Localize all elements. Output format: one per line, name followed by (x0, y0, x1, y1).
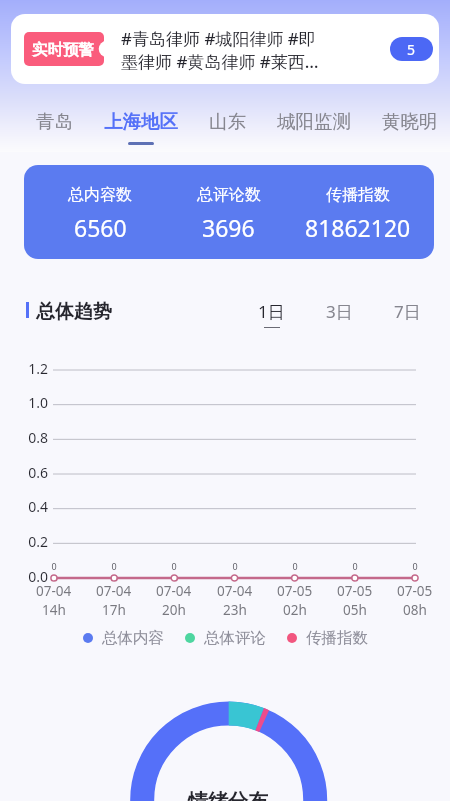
staticText: 山东 (209, 110, 246, 133)
staticText: 0 (403, 560, 427, 572)
staticText: 传播指数 (306, 628, 368, 648)
staticText: 情绪分布 (188, 789, 268, 801)
button[interactable]: 青岛 (36, 110, 73, 145)
staticText: 0 (223, 560, 247, 572)
button[interactable]: 1日 (258, 300, 285, 328)
button[interactable]: 山东 (209, 110, 246, 145)
staticText: 0 (42, 560, 66, 572)
staticText: 6560 (74, 212, 127, 243)
staticText: 08h (403, 601, 427, 619)
staticText: 城阳监测 (277, 110, 351, 133)
staticText: 14h (42, 601, 66, 619)
button[interactable]: 总体内容 (83, 628, 164, 648)
staticText: 07-04 (217, 582, 253, 600)
staticText: 81862120 (305, 212, 411, 243)
staticText: 黄晓明 (382, 110, 438, 133)
staticText: 0 (343, 560, 367, 572)
staticText: #青岛律师 #城阳律师 #即 (121, 27, 316, 50)
staticText: 0.0 (8, 567, 48, 586)
button[interactable]: 5 (390, 37, 433, 61)
button[interactable]: 传播指数 (287, 628, 368, 648)
staticText: 0.4 (8, 497, 48, 516)
button[interactable]: 实时预警 (11, 14, 439, 84)
button[interactable]: 城阳监测 (277, 110, 351, 145)
button[interactable]: 7日 (394, 300, 421, 328)
staticText: 青岛 (36, 110, 73, 133)
staticText: 总评论数 (197, 185, 261, 205)
staticText: 总体内容 (102, 628, 164, 648)
staticText: 07-04 (36, 582, 72, 600)
staticText: 07-04 (96, 582, 132, 600)
staticText: 0 (283, 560, 307, 572)
button[interactable]: 总体评论 (185, 628, 266, 648)
staticText: 7日 (394, 300, 421, 323)
staticText: 1.0 (8, 393, 48, 412)
staticText: 20h (162, 601, 186, 619)
staticText: 0 (162, 560, 186, 572)
staticText: 总体评论 (204, 628, 266, 648)
staticText: 上海地区 (104, 110, 178, 133)
staticText: 05h (343, 601, 367, 619)
staticText: 总体趋势 (36, 300, 112, 324)
staticText: 0 (102, 560, 126, 572)
button[interactable]: 上海地区 (104, 110, 178, 145)
staticText: 0.8 (8, 428, 48, 447)
staticText: 3日 (326, 300, 353, 323)
staticText: 02h (283, 601, 307, 619)
staticText: 实时预警 (32, 40, 94, 60)
button[interactable]: 3日 (326, 300, 353, 328)
staticText: 17h (102, 601, 126, 619)
staticText: 总内容数 (68, 185, 132, 205)
staticText: 07-05 (397, 582, 433, 600)
staticText: 07-05 (337, 582, 373, 600)
staticText: 1.2 (8, 359, 48, 378)
staticText: 07-05 (277, 582, 313, 600)
staticText: 07-04 (156, 582, 192, 600)
button[interactable]: 总内容数 (24, 165, 434, 259)
button[interactable]: 实时预警 (24, 32, 104, 66)
staticText: 1日 (258, 300, 285, 323)
staticText: 墨律师 #黄岛律师 #莱西… (121, 50, 319, 73)
staticText: 5 (407, 40, 416, 59)
staticText: 3696 (202, 212, 255, 243)
staticText: 0.2 (8, 532, 48, 551)
staticText: 传播指数 (326, 185, 390, 205)
button[interactable]: 黄晓明 (382, 110, 438, 145)
staticText: 23h (223, 601, 247, 619)
staticText: 0.6 (8, 463, 48, 482)
